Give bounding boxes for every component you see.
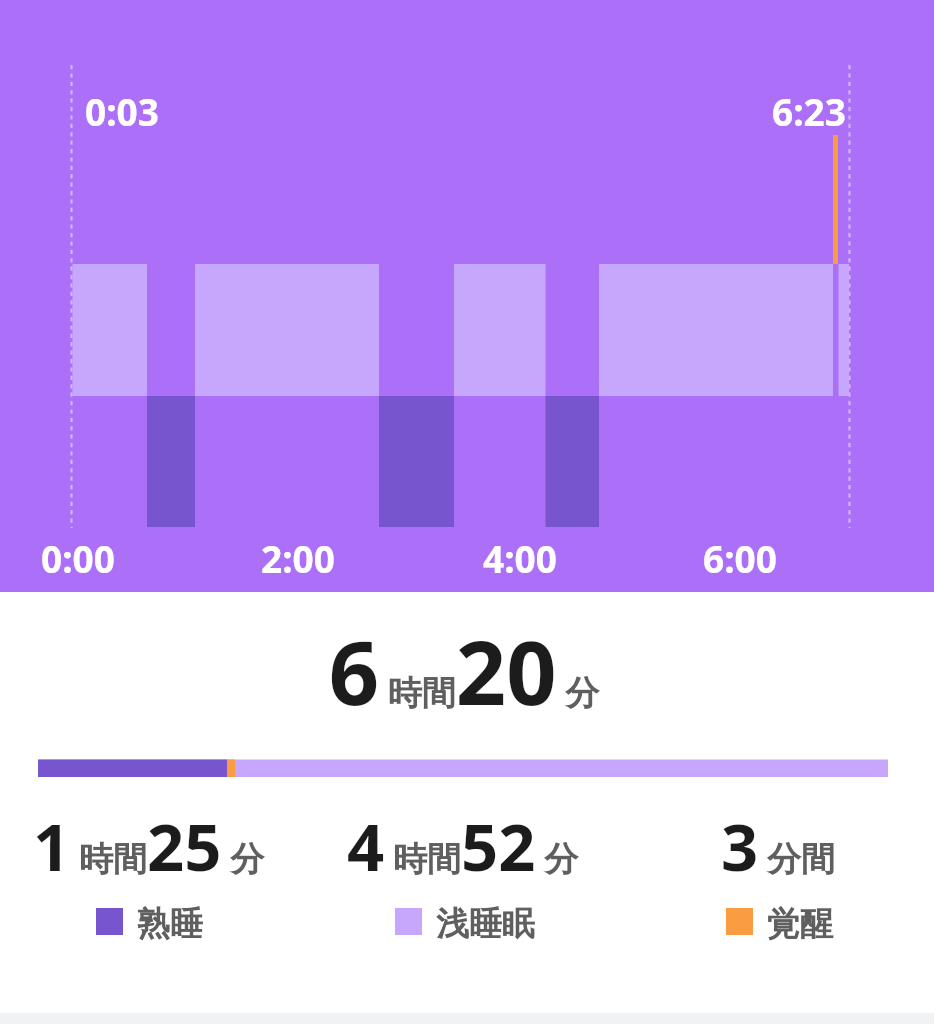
staticText: 浅睡眠 (436, 903, 535, 945)
button[interactable]: 6 時間20 分 (0, 600, 934, 790)
button[interactable]: 4 時間52 分 (338, 798, 628, 950)
staticText: 4 時間52 分 (347, 802, 579, 891)
staticText: 2:00 (261, 533, 335, 583)
button[interactable]: 1 時間25 分 (24, 798, 314, 950)
staticText: 6:00 (703, 533, 777, 583)
button[interactable]: 3 分間 (700, 798, 920, 950)
staticText: 1 時間25 分 (33, 802, 265, 891)
staticText: 6 時間20 分 (0, 611, 931, 731)
staticText: 0:03 (85, 86, 159, 136)
staticText: 0:00 (41, 533, 115, 583)
staticText: 覚醒 (767, 903, 833, 945)
button[interactable]: Sleep stage chart (0, 0, 934, 592)
staticText: 6:23 (772, 86, 846, 136)
staticText: 熟睡 (137, 903, 203, 945)
staticText: 3 分間 (721, 802, 836, 891)
staticText: 4:00 (483, 533, 557, 583)
